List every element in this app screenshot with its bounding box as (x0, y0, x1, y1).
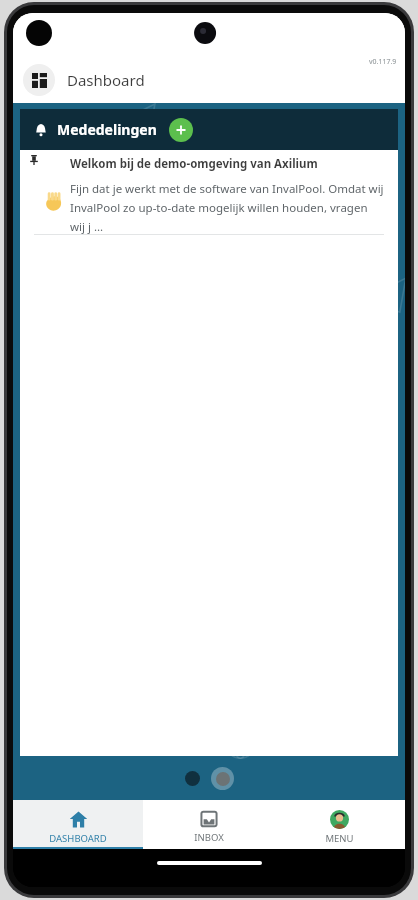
other: Dashboard (69, 810, 88, 829)
staticText: Fijn dat je werkt met de software van In… (70, 181, 384, 234)
staticText: MENU (325, 832, 354, 845)
button[interactable]: Menu (274, 800, 405, 849)
button[interactable]: Page 2 (211, 767, 234, 790)
staticText: Dashboard (67, 70, 145, 90)
staticText: DASHBOARD (49, 832, 107, 845)
other: Menu (330, 810, 349, 829)
staticText: Welkom bij de demo-omgeving van Axilium (70, 156, 318, 172)
staticText: v0.117.9 (369, 57, 397, 67)
staticText: Mededelingen (57, 120, 157, 139)
button[interactable]: Dashboard menu (23, 64, 55, 96)
button[interactable]: Add announcement (169, 118, 193, 142)
button[interactable]: Inbox (143, 800, 274, 849)
staticText: INBOX (194, 831, 224, 844)
other: Inbox (200, 810, 218, 828)
button[interactable]: Welkom bij de demo-omgeving van Axilium (20, 150, 398, 756)
button[interactable]: Page 1 (185, 771, 200, 786)
button[interactable]: Dashboard (13, 800, 143, 849)
